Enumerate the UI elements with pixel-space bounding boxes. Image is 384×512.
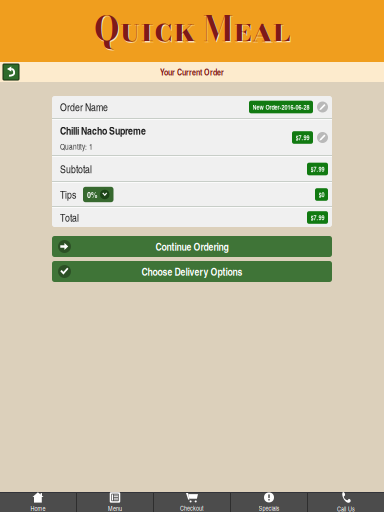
staticText: Checkout [180,503,204,512]
button[interactable]: Continue Ordering [52,236,332,257]
staticText: Menu [108,504,122,512]
staticText: Total [60,210,79,225]
staticText: Quantity: 1 [60,141,93,152]
button[interactable]: Menu [77,493,153,512]
staticText: Home [30,504,45,512]
staticText: Specials [258,503,279,512]
staticText: 0% [87,188,97,201]
button[interactable]: Choose Delivery Options [52,261,332,282]
staticText: $0 [318,190,324,199]
staticText: Subtotal [60,162,92,176]
staticText: Call Us [337,504,355,512]
staticText: Your Current Order [160,66,224,78]
staticText: New Order-2016-06-28 [252,102,309,112]
button[interactable]: Edit item [317,132,328,143]
button[interactable]: Back [3,64,19,80]
staticText: Quick Meal [94,4,290,54]
staticText: Chilli Nacho Supreme [60,123,146,138]
button[interactable]: Specials [231,493,307,512]
button[interactable]: Call Us [308,493,384,512]
staticText: $7.99 [310,164,324,174]
button[interactable]: 0% [83,187,113,202]
button[interactable]: Edit order name [317,101,328,112]
staticText: Choose Delivery Options [141,264,242,279]
staticText: Quick Meal [95,5,291,56]
staticText: $7.99 [295,133,309,142]
staticText: Order Name [60,100,108,114]
staticText: $7.99 [310,213,324,222]
staticText: Continue Ordering [155,239,228,254]
staticText: Tips [60,187,76,202]
button[interactable]: Checkout [154,493,230,512]
button[interactable]: Home [0,493,76,512]
